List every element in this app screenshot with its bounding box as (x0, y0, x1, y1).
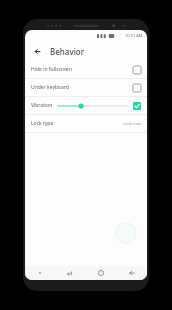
button[interactable]: Vibration (25, 97, 147, 115)
staticText: Vibration (31, 102, 53, 109)
staticText: Under keyboard (31, 84, 133, 91)
button[interactable]: Recents (85, 266, 116, 280)
staticText: 10:51 AM (125, 33, 143, 38)
button[interactable]: Lock type (25, 115, 147, 133)
button[interactable]: Back (30, 44, 44, 58)
staticText: Lock now (123, 121, 141, 126)
staticText: Behavior (50, 46, 85, 57)
staticText: Hide in fullscreen (31, 66, 133, 73)
button[interactable]: Add (115, 222, 137, 244)
staticText: Lock type (31, 120, 123, 127)
button[interactable]: Back (116, 266, 147, 280)
button[interactable]: Menu (25, 266, 55, 280)
button[interactable]: Keyboard (55, 266, 85, 280)
button[interactable]: Hide in fullscreen (25, 61, 147, 79)
button[interactable]: Under keyboard (25, 79, 147, 97)
